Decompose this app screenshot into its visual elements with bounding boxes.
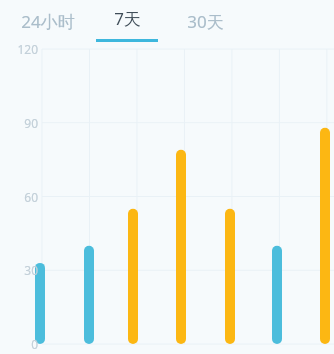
staticText: 7天 [114,7,141,30]
staticText: 60 [24,189,38,205]
staticText: 120 [17,41,38,57]
staticText: 0 [31,336,38,352]
staticText: 30天 [187,10,224,33]
button[interactable]: 7天 [96,4,158,42]
staticText: 90 [24,115,38,131]
staticText: 30 [24,262,38,278]
staticText: 24小时 [21,10,75,33]
button[interactable]: 30天 [172,4,238,38]
button[interactable]: 24小时 [8,4,88,38]
